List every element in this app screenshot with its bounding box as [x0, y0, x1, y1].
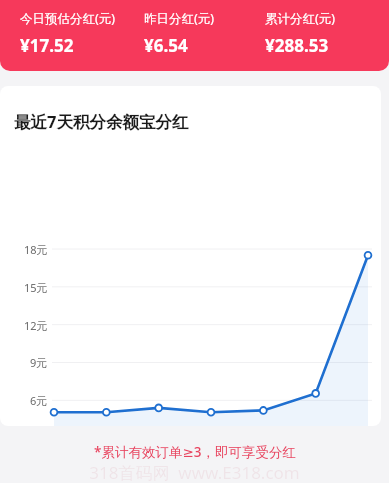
- staticText: 6元: [30, 393, 48, 408]
- staticText: 318首码网 www.E318.com: [89, 461, 300, 483]
- staticText: 12元: [24, 318, 48, 333]
- staticText: ¥6.54: [144, 34, 188, 57]
- staticText: ¥17.52: [20, 34, 74, 57]
- staticText: 最近7天积分余额宝分红: [14, 110, 189, 133]
- staticText: 昨日分红(元): [144, 10, 215, 27]
- staticText: 今日预估分红(元): [20, 10, 116, 27]
- staticText: ¥288.53: [265, 34, 329, 57]
- staticText: *累计有效订单≥3，即可享受分红: [94, 443, 296, 461]
- staticText: 18元: [24, 242, 48, 257]
- staticText: 9元: [30, 355, 48, 370]
- button[interactable]: 今日预估分红(元): [0, 0, 140, 57]
- staticText: 累计分红(元): [265, 10, 336, 27]
- button[interactable]: 昨日分红(元): [140, 0, 255, 57]
- staticText: 15元: [24, 280, 48, 295]
- button[interactable]: 最近7天积分余额宝分红: [0, 86, 381, 426]
- button[interactable]: 累计分红(元): [255, 0, 389, 57]
